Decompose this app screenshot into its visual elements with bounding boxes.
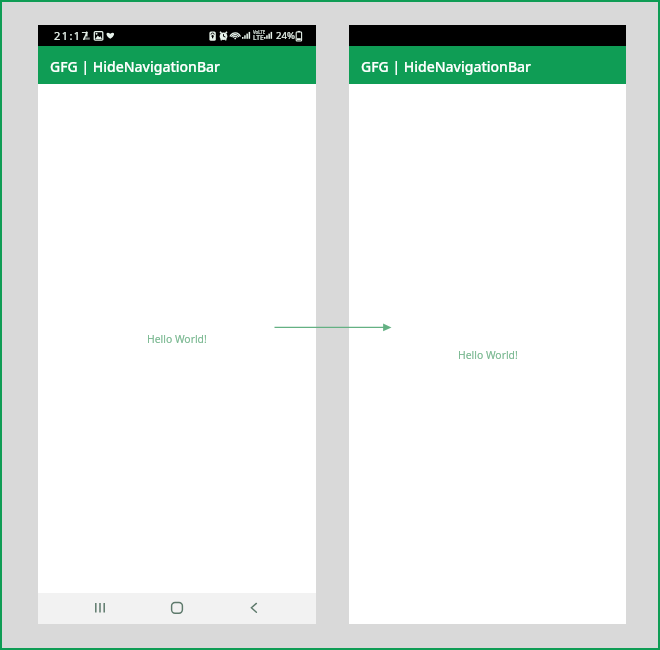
button[interactable]: GFG | HideNavigationBar [38,46,316,84]
staticText: VoLTE [253,29,266,35]
staticText: GFG | HideNavigationBar [361,57,531,76]
button[interactable]: GFG | HideNavigationBar [349,46,626,84]
staticText: 21:17 [54,28,90,43]
staticText: LTE [253,33,264,42]
staticText: Hello World! [147,332,207,346]
staticText: Hello World! [458,348,518,362]
staticText: GFG | HideNavigationBar [50,57,220,76]
button[interactable]: Recent apps [62,593,138,624]
staticText: 24% [276,29,295,42]
button[interactable]: Home [138,593,215,624]
button[interactable]: Back [215,593,292,624]
